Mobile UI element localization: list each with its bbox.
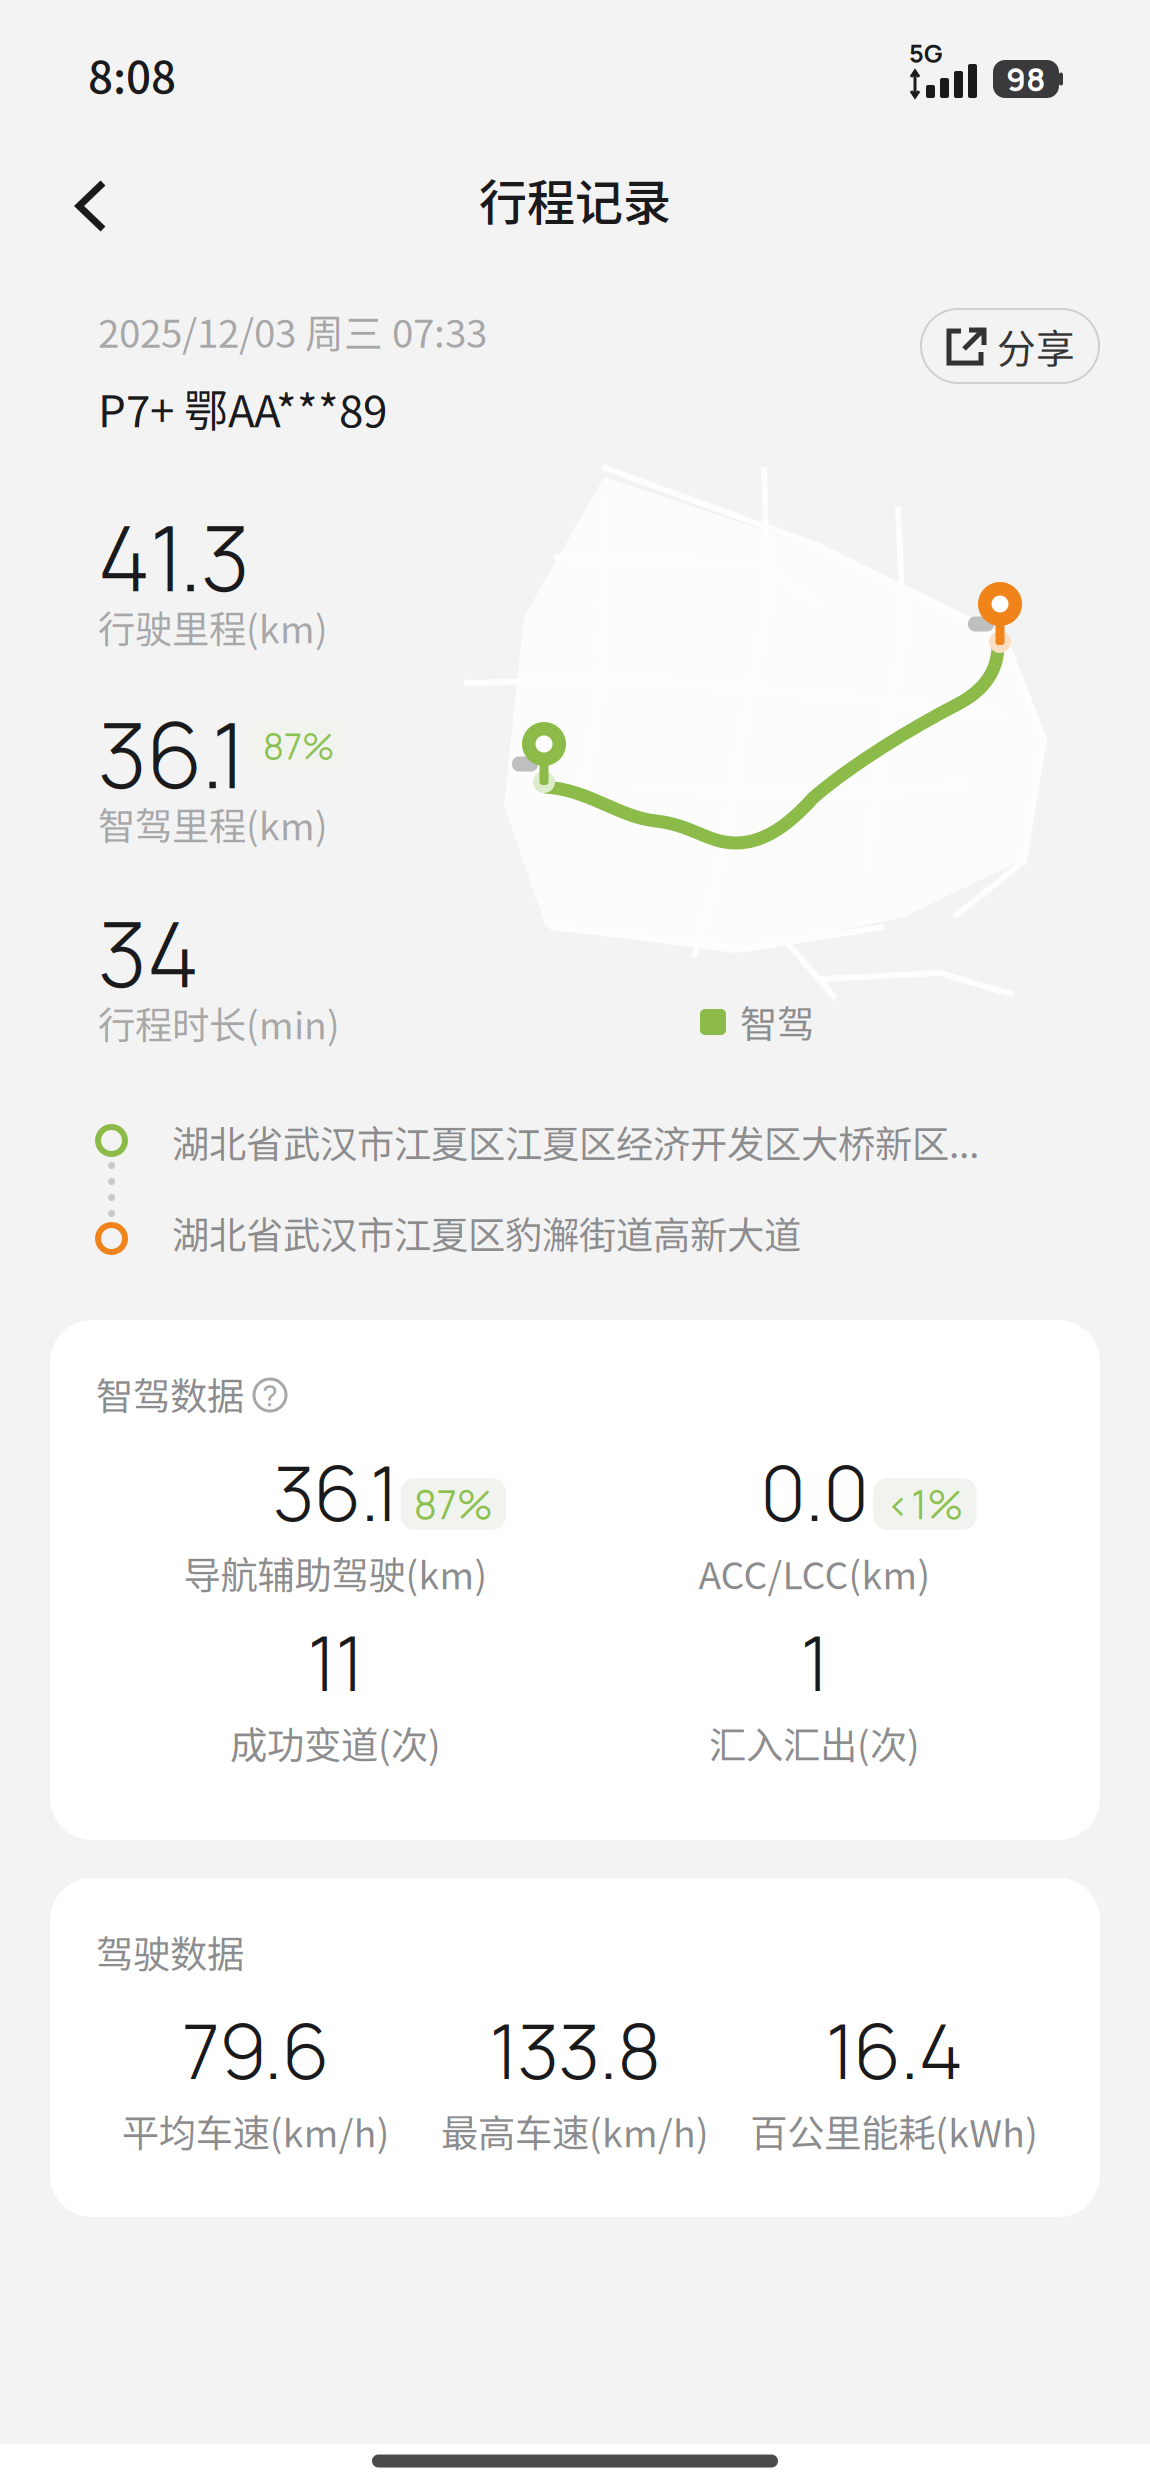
staticText: 1 — [800, 1610, 828, 1714]
staticText: 湖北省武汉市江夏区豹澥街道高新大道 — [172, 1206, 801, 1260]
staticText: 36.1 — [98, 693, 245, 815]
staticText: P7+ 鄂AA***89 — [98, 376, 387, 440]
staticText: 最高车速(km/h) — [441, 2104, 709, 2158]
staticText: 分享 — [997, 318, 1075, 374]
staticText: 87% — [263, 721, 334, 770]
staticText: 16.4 — [826, 1998, 963, 2102]
staticText: 百公里能耗(kWh) — [750, 2104, 1038, 2158]
staticText: 41.3 — [98, 496, 250, 618]
staticText: 智驾数据 — [96, 1367, 244, 1421]
staticText: 湖北省武汉市江夏区江夏区经济开发区大桥新区... — [172, 1115, 979, 1169]
staticText: 36.1 — [273, 1440, 398, 1544]
staticText: 34 — [98, 892, 199, 1014]
staticText: 87% — [414, 1477, 493, 1531]
staticText: 成功变道(次) — [230, 1716, 441, 1770]
staticText: 98 — [1006, 57, 1046, 101]
staticText: 平均车速(km/h) — [122, 2104, 390, 2158]
button[interactable]: 分享 — [874, 294, 1052, 368]
staticText: 8:08 — [88, 42, 176, 106]
staticText: 导航辅助驾驶(km) — [183, 1546, 487, 1600]
staticText: 行程时长(min) — [98, 996, 340, 1050]
staticText: 智驾里程(km) — [98, 797, 328, 851]
staticText: 行驶里程(km) — [98, 600, 328, 654]
staticText: 智驾 — [740, 995, 814, 1049]
staticText: ACC/LCC(km) — [698, 1546, 930, 1600]
staticText: 行程记录 — [479, 164, 671, 234]
staticText: 2025/12/03 周三 07:33 — [98, 303, 487, 359]
staticText: 133.8 — [489, 1998, 660, 2102]
staticText: <1% — [886, 1477, 963, 1531]
staticText: 5G — [909, 36, 943, 70]
staticText: 11 — [307, 1610, 363, 1714]
staticText: 驾驶数据 — [96, 1925, 244, 1979]
staticText: ? — [262, 1375, 278, 1415]
staticText: 0.0 — [760, 1440, 868, 1544]
staticText: 汇入汇出(次) — [709, 1716, 920, 1770]
button[interactable]: 返回 — [50, 163, 136, 251]
staticText: 79.6 — [182, 1998, 329, 2102]
button[interactable]: 智驾数据说明 — [254, 1378, 286, 1410]
